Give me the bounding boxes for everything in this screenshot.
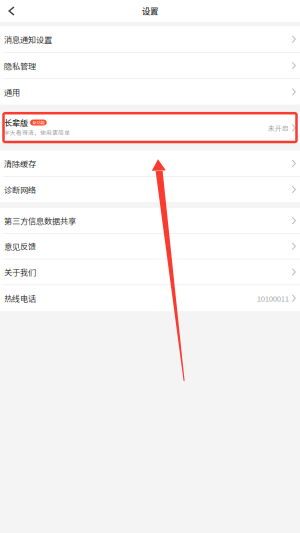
staticText: 意见反馈: [4, 240, 36, 252]
staticText: 第三方信息数据共享: [4, 215, 76, 226]
button[interactable]: 清除缓存: [0, 151, 300, 176]
staticText: 诊断网络: [4, 184, 36, 195]
staticText: 长辈版: [4, 117, 28, 128]
staticText: 消息通知设置: [4, 33, 52, 45]
staticText: 通用: [4, 86, 20, 98]
button[interactable]: 热线电话: [0, 285, 300, 311]
staticText: 设置: [142, 5, 158, 17]
button[interactable]: 隐私管理: [0, 53, 300, 78]
button[interactable]: 第三方信息数据共享: [0, 208, 300, 233]
button[interactable]: 意见反馈: [0, 234, 300, 259]
button[interactable]: 通用: [0, 79, 300, 105]
button[interactable]: Back: [0, 0, 21, 22]
button[interactable]: 消息通知设置: [0, 26, 300, 52]
button[interactable]: 诊断网络: [0, 177, 300, 202]
button[interactable]: 关于我们: [0, 259, 300, 284]
staticText: 10100011: [257, 293, 289, 304]
button[interactable]: 长辈版: [0, 112, 300, 143]
staticText: 未开启: [268, 123, 289, 133]
staticText: 热线电话: [4, 292, 36, 304]
staticText: 隐私管理: [4, 60, 36, 71]
staticText: 字大看得清，使用更简单: [4, 128, 70, 137]
staticText: 新功能: [32, 119, 44, 126]
staticText: 关于我们: [4, 266, 36, 278]
staticText: 清除缓存: [4, 158, 36, 169]
